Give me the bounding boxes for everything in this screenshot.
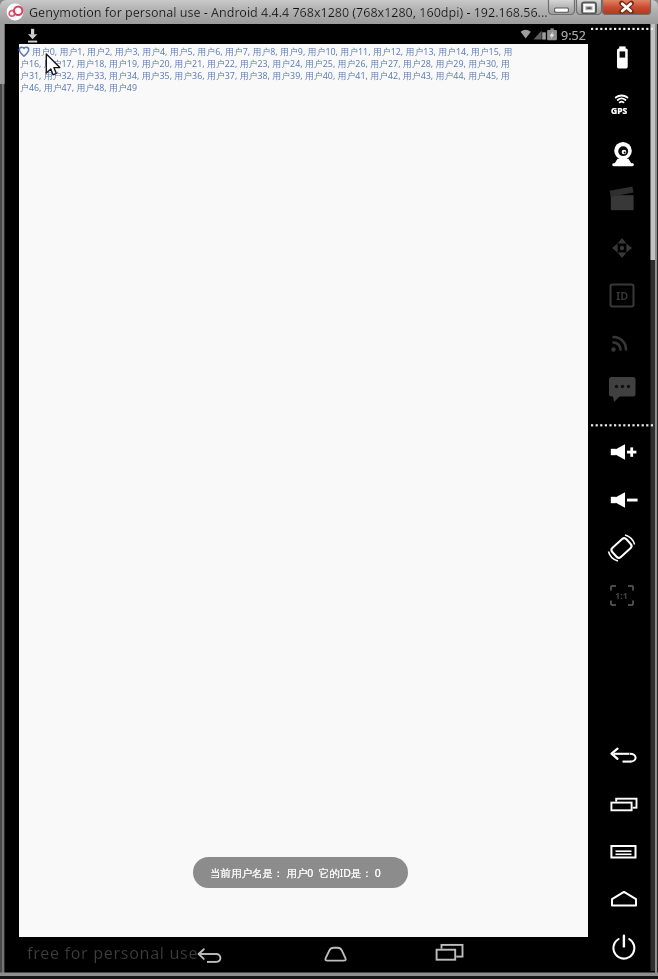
button[interactable] bbox=[548, 0, 575, 15]
button[interactable] bbox=[603, 929, 641, 967]
button[interactable] bbox=[603, 324, 641, 362]
staticText: 当前用户名是： 用户0 它的ID是： 0 bbox=[210, 866, 381, 880]
button[interactable] bbox=[603, 481, 641, 519]
staticText: 1:1 bbox=[615, 589, 628, 601]
button[interactable] bbox=[603, 87, 641, 125]
button[interactable] bbox=[603, 576, 641, 614]
button[interactable] bbox=[300, 937, 370, 972]
button[interactable] bbox=[603, 181, 641, 219]
button[interactable] bbox=[603, 833, 641, 871]
button[interactable] bbox=[603, 880, 641, 918]
button[interactable] bbox=[576, 0, 602, 15]
staticText: 户46, 用户47, 用户48, 用户49 bbox=[20, 81, 138, 93]
button[interactable] bbox=[603, 135, 641, 173]
button[interactable] bbox=[173, 937, 243, 972]
button[interactable] bbox=[603, 277, 641, 315]
button[interactable] bbox=[603, 529, 641, 567]
button[interactable]: 用户0, 用户1, 用户2, 用户3, 用户4, 用户5, 用户6, 用户7, … bbox=[32, 45, 513, 57]
button[interactable] bbox=[603, 39, 641, 77]
staticText: 户31, 用户32, 用户33, 用户34, 用户35, 用户36, 用户37,… bbox=[20, 69, 510, 81]
button[interactable] bbox=[603, 737, 641, 775]
button[interactable] bbox=[603, 786, 641, 824]
staticText: ID bbox=[616, 288, 629, 303]
button[interactable] bbox=[603, 433, 641, 471]
button[interactable] bbox=[414, 937, 484, 972]
staticText: free for personal use bbox=[27, 942, 199, 964]
staticText: 9:52 bbox=[561, 27, 586, 44]
button[interactable] bbox=[603, 372, 641, 410]
button[interactable] bbox=[19, 44, 588, 937]
staticText: GPS bbox=[611, 105, 628, 117]
staticText: Genymotion for personal use - Android 4.… bbox=[29, 4, 548, 21]
staticText: 户16, 用户17, 用户18, 用户19, 用户20, 用户21, 用户22,… bbox=[20, 57, 510, 69]
button[interactable] bbox=[603, 229, 641, 267]
button[interactable] bbox=[602, 0, 651, 15]
